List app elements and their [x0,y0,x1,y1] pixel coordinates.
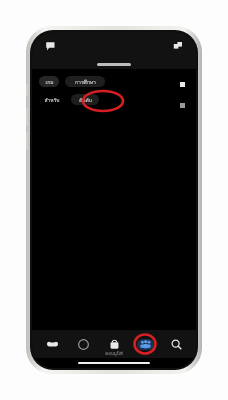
staticText: อันดับ [79,96,92,104]
button[interactable]: อันดับ [71,94,99,105]
staticText: คอมมูนิตี [105,350,123,357]
button[interactable]: Flag [176,99,188,111]
button[interactable]: Explore [72,333,94,355]
button[interactable]: Store [103,333,125,355]
button[interactable]: Chat [42,38,58,54]
button[interactable]: Games [41,333,63,355]
staticText: สำหรับ [44,96,60,104]
button[interactable]: Search [165,333,187,355]
staticText: การศึกษา [75,78,96,86]
button[interactable]: Community [134,333,156,355]
button[interactable]: Account [176,78,188,90]
button[interactable]: สำหรับ [39,94,65,105]
button[interactable]: Share [170,38,186,54]
button[interactable]: เกม [39,76,59,87]
button[interactable]: การศึกษา [65,76,105,87]
staticText: เกม [45,78,54,86]
